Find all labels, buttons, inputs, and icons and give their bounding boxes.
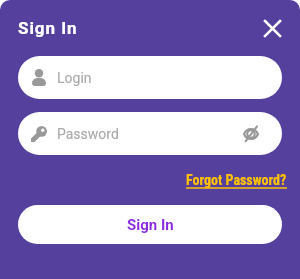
staticText: Login <box>57 70 92 86</box>
staticText: Sign In <box>18 18 78 38</box>
staticText: Password <box>57 126 119 142</box>
button[interactable]: Sign In <box>18 18 78 38</box>
button[interactable]: Sign In <box>18 205 282 244</box>
button[interactable]: Password <box>18 112 282 155</box>
button[interactable]: Login <box>18 56 282 99</box>
staticText: Forgot Password? <box>186 172 287 188</box>
staticText: Sign In <box>127 216 174 234</box>
button[interactable]: Forgot Password? <box>186 172 287 188</box>
button[interactable]: Close <box>257 13 288 44</box>
button[interactable]: Show password <box>236 119 266 149</box>
